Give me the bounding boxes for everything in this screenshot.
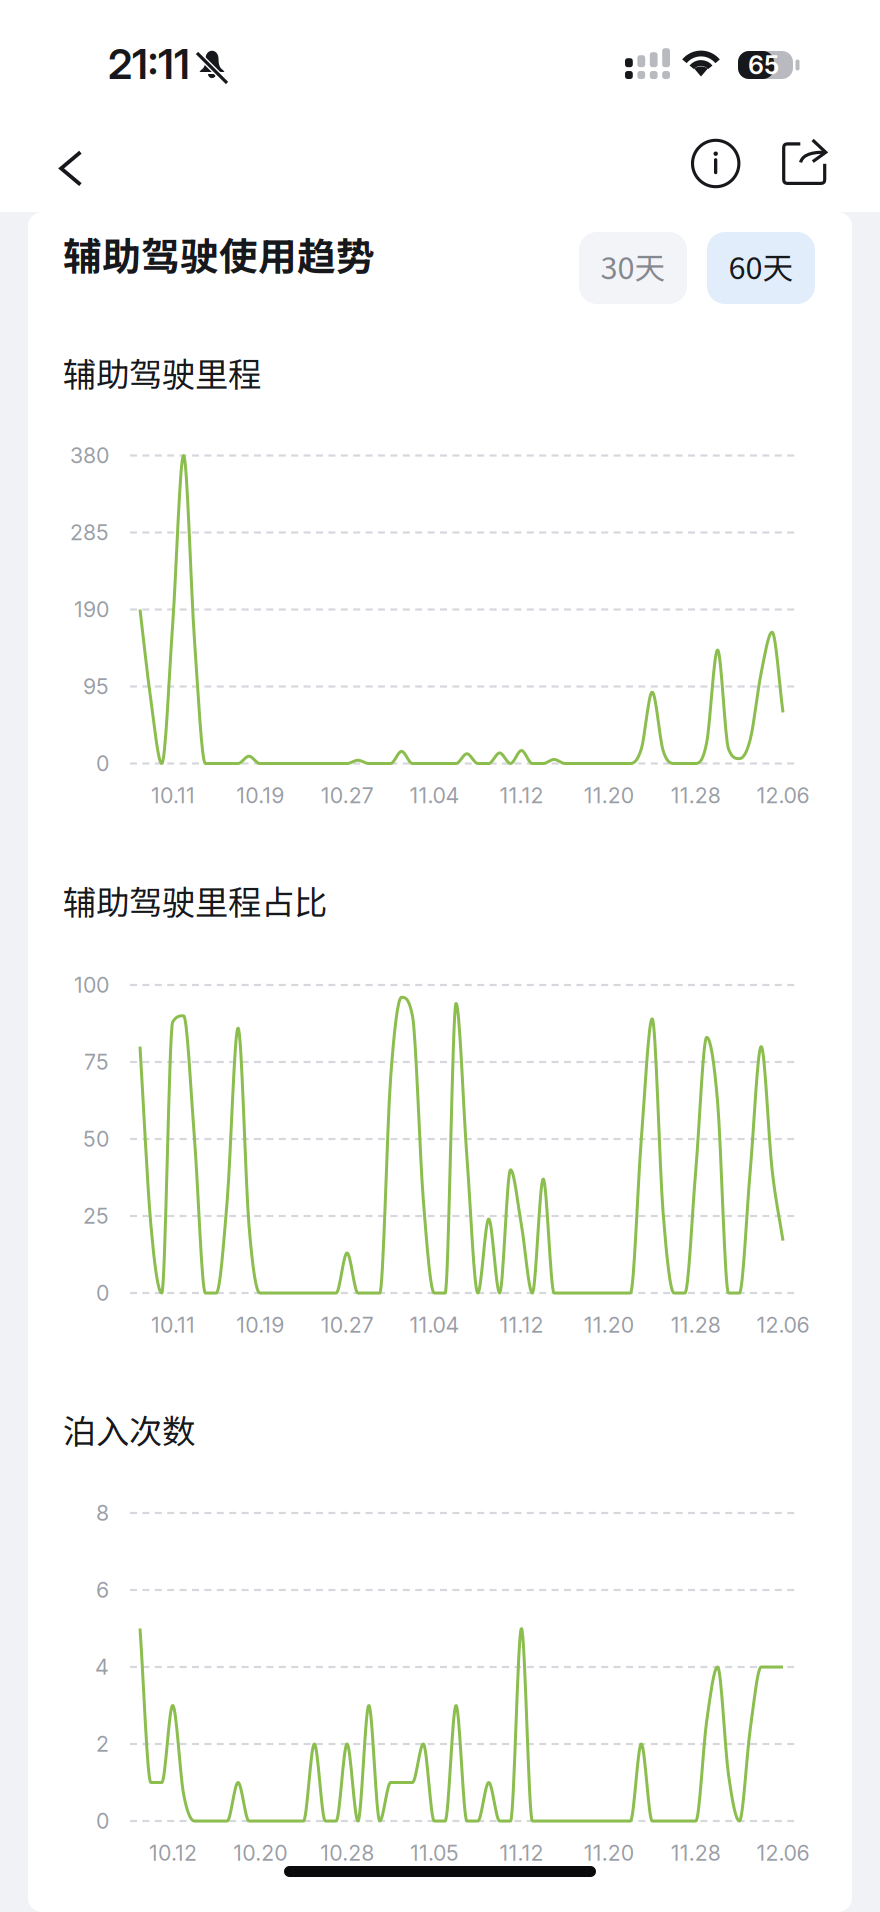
staticText: 12.06 [756, 1312, 809, 1338]
staticText: 11.28 [671, 783, 721, 808]
staticText: 12.06 [756, 783, 809, 808]
staticText: 10.19 [236, 783, 284, 808]
staticText: 60天 [728, 244, 793, 288]
staticText: 11.04 [409, 1312, 459, 1338]
staticText: 泊入次数 [63, 1405, 195, 1453]
staticText: 12.06 [756, 1840, 809, 1866]
staticText: 10.20 [233, 1840, 287, 1866]
staticText: 10.27 [321, 1312, 374, 1338]
staticText: 10.28 [320, 1840, 374, 1866]
staticText: 辅助驾驶里程占比 [63, 876, 327, 924]
staticText: 6 [96, 1577, 109, 1603]
staticText: 11.20 [584, 783, 634, 808]
staticText: 4 [95, 1654, 109, 1680]
staticText: 10.12 [149, 1840, 197, 1866]
staticText: 辅助驾驶里程 [63, 348, 261, 396]
staticText: 25 [83, 1203, 109, 1229]
staticText: 10.19 [236, 1312, 284, 1338]
staticText: 21:11 [108, 39, 190, 89]
staticText: 380 [70, 443, 109, 468]
staticText: 30天 [600, 244, 665, 288]
staticText: 0 [96, 1808, 109, 1834]
staticText: 11.28 [671, 1840, 721, 1866]
staticText: 285 [70, 520, 109, 545]
staticText: 10.11 [151, 1312, 195, 1338]
button[interactable]: 30天 [579, 232, 687, 304]
staticText: 0 [96, 1280, 109, 1306]
staticText: 辅助驾驶使用趋势 [63, 226, 375, 282]
staticText: 11.04 [409, 783, 459, 808]
staticText: 95 [83, 674, 109, 699]
staticText: 0 [96, 751, 109, 776]
staticText: 2 [96, 1731, 109, 1757]
staticText: 75 [84, 1049, 109, 1075]
button[interactable]: 60天 [707, 232, 815, 304]
staticText: 10.27 [321, 783, 374, 808]
staticText: 11.20 [584, 1840, 634, 1866]
staticText: 65 [748, 50, 779, 80]
button[interactable]: Back [38, 136, 100, 198]
staticText: 10.11 [151, 783, 195, 808]
staticText: 190 [74, 597, 109, 622]
staticText: 50 [83, 1126, 109, 1152]
staticText: 11.05 [410, 1840, 459, 1866]
staticText: 11.20 [584, 1312, 634, 1338]
staticText: 100 [74, 972, 109, 998]
staticText: 11.12 [500, 1312, 544, 1338]
staticText: 11.12 [500, 1840, 544, 1866]
button[interactable]: Share [776, 132, 838, 194]
staticText: 11.28 [671, 1312, 721, 1338]
staticText: 11.12 [500, 783, 544, 808]
button[interactable]: Info [684, 132, 746, 194]
staticText: 8 [96, 1500, 109, 1526]
